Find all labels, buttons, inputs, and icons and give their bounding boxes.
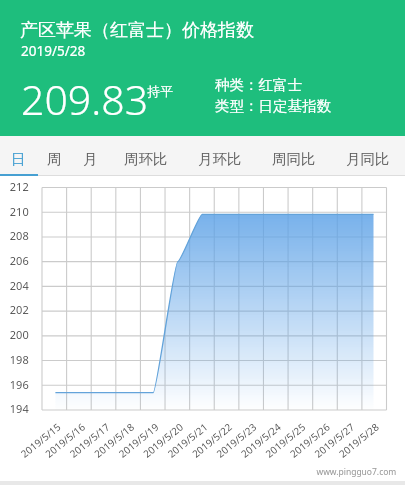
staticText: 月同比 (346, 150, 390, 168)
staticText: 209.83 (21, 71, 149, 127)
staticText: 日 (11, 150, 26, 168)
button[interactable]: 月 (72, 136, 109, 176)
staticText: 周同比 (272, 150, 316, 168)
button[interactable]: 周同比 (257, 136, 331, 176)
staticText: 2019/5/28 (21, 42, 86, 60)
staticText: 种类：红富士 (215, 76, 302, 94)
staticText: 周 (47, 150, 62, 168)
staticText: 持平 (147, 83, 173, 99)
button[interactable]: 周 (36, 136, 72, 176)
button[interactable]: 日 (0, 136, 36, 176)
button[interactable]: 月环比 (183, 136, 257, 176)
staticText: 月 (83, 150, 98, 168)
staticText: 周环比 (124, 150, 168, 168)
button[interactable]: 周环比 (109, 136, 183, 176)
button[interactable]: 月同比 (331, 136, 405, 176)
staticText: 产区苹果（红富士）价格指数 (20, 19, 254, 42)
staticText: 月环比 (198, 150, 242, 168)
staticText: 类型：日定基指数 (215, 97, 331, 115)
